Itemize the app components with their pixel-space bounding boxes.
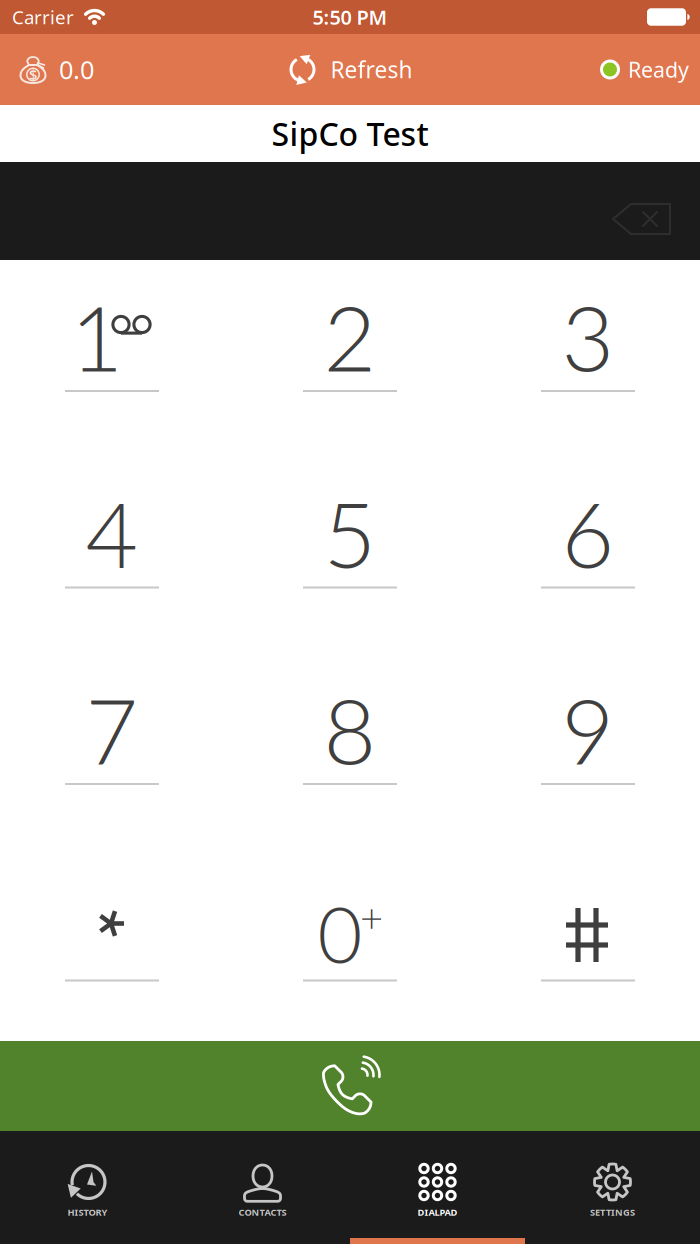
button[interactable]: SETTINGS [525, 1131, 700, 1244]
staticText: 0 [317, 887, 362, 979]
button[interactable]: Call [0, 1041, 700, 1131]
staticText: 3 [561, 282, 614, 391]
staticText: 5:50 PM [312, 4, 387, 30]
staticText: 8 [323, 675, 376, 784]
button[interactable]: 3 [476, 283, 700, 392]
staticText: 9 [561, 675, 614, 784]
button[interactable]: DIALPAD [350, 1131, 525, 1244]
staticText: CONTACTS [238, 1206, 286, 1218]
button[interactable]: HISTORY [0, 1131, 175, 1244]
button[interactable]: 9 [476, 676, 700, 785]
button[interactable]: CONTACTS [175, 1131, 350, 1244]
staticText: 7 [85, 675, 138, 784]
staticText: 5 [323, 479, 376, 587]
staticText: 4 [85, 479, 138, 587]
button[interactable]: 1 [0, 283, 224, 392]
button[interactable]: 6 [476, 479, 700, 588]
staticText: 2 [323, 282, 376, 391]
button[interactable]: 2 [224, 283, 476, 392]
button[interactable]: 5 [224, 479, 476, 588]
staticText: 6 [561, 479, 614, 587]
button[interactable]: Delete [612, 203, 672, 235]
staticText: DIALPAD [417, 1206, 457, 1218]
button[interactable]: Balance [0, 53, 94, 86]
staticText: 1 [70, 282, 123, 391]
button[interactable]: 4 [0, 479, 224, 588]
staticText: SETTINGS [590, 1206, 635, 1218]
button[interactable]: 7 [0, 676, 224, 785]
button[interactable] [476, 872, 700, 981]
staticText: $ [29, 65, 37, 84]
staticText: SipCo Test [271, 112, 428, 155]
button[interactable]: 0 [224, 872, 476, 981]
staticText: + [360, 893, 383, 941]
staticText: Carrier [12, 5, 74, 29]
button[interactable]: 8 [224, 676, 476, 785]
staticText: HISTORY [67, 1206, 107, 1218]
staticText: Ready [628, 55, 689, 84]
staticText: Refresh [330, 54, 412, 84]
button[interactable]: Status: Ready [600, 55, 700, 84]
button[interactable]: Refresh [287, 54, 412, 84]
staticText: 0.0 [59, 53, 94, 86]
button[interactable] [0, 872, 224, 981]
